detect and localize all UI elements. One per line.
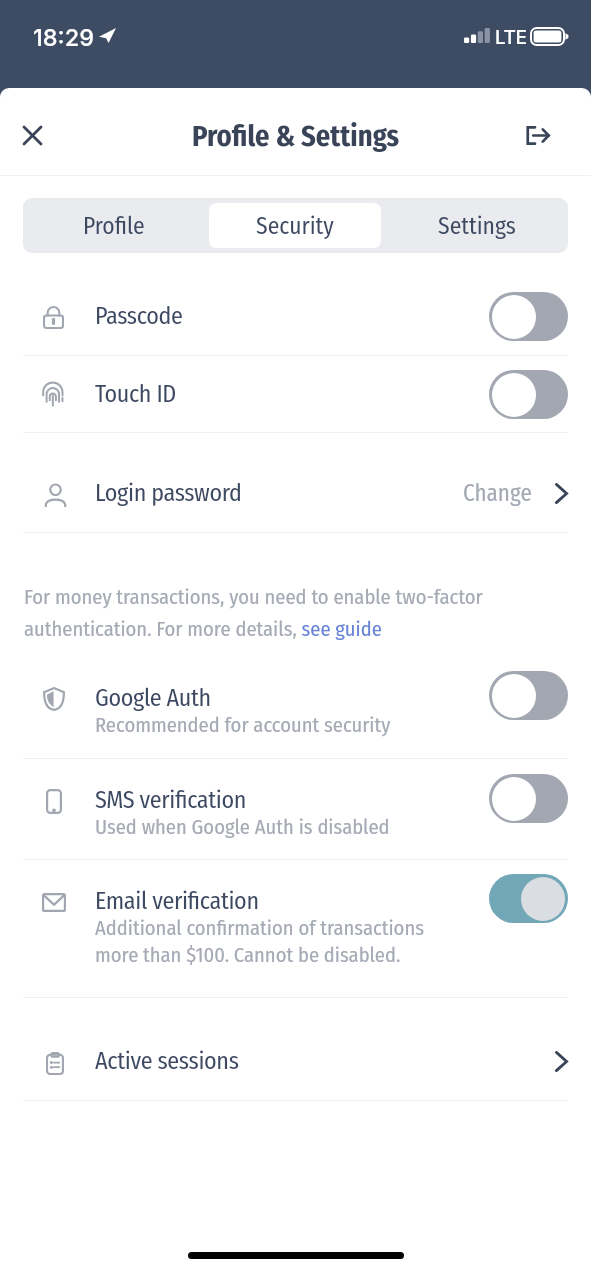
staticText: Touch ID [95, 380, 176, 409]
staticText: Settings [438, 212, 516, 240]
staticText: Email verification [95, 887, 259, 916]
button[interactable]: Close [8, 111, 56, 159]
button[interactable]: Active sessions [23, 1022, 568, 1100]
staticText: LTE [495, 26, 527, 49]
button[interactable]: Toggle [489, 292, 568, 341]
button[interactable]: Login password [23, 454, 568, 532]
staticText: SMS verification [95, 786, 247, 815]
button[interactable]: Google Auth [23, 657, 568, 758]
staticText: Passcode [95, 302, 183, 331]
button[interactable]: Log out [513, 111, 561, 159]
button[interactable]: SMS verification [23, 759, 568, 859]
button[interactable]: Toggle [489, 370, 568, 419]
staticText: Additional confirmation of transactions … [95, 916, 424, 967]
staticText: Active sessions [95, 1047, 555, 1076]
button[interactable]: Toggle [489, 671, 568, 720]
button[interactable]: Profile [28, 203, 199, 248]
staticText: For money transactions, you need to enab… [24, 585, 483, 641]
staticText: Google Auth [95, 684, 211, 713]
button[interactable]: Settings [391, 203, 563, 248]
staticText: Change [463, 479, 532, 507]
staticText: Login password [95, 479, 463, 508]
button[interactable]: Touch ID [23, 356, 568, 432]
staticText: 18:29 [33, 23, 94, 51]
staticText: Recommended for account security [95, 713, 391, 738]
staticText: Security [256, 212, 334, 240]
staticText: Profile [83, 212, 145, 240]
button[interactable]: Security [209, 203, 381, 248]
button[interactable]: Toggle [489, 874, 568, 923]
staticText: Profile & Settings [192, 119, 400, 153]
staticText: Used when Google Auth is disabled [95, 815, 390, 840]
button[interactable]: Toggle [489, 774, 568, 823]
button[interactable]: Passcode [23, 278, 568, 355]
button[interactable]: Email verification [23, 860, 568, 997]
